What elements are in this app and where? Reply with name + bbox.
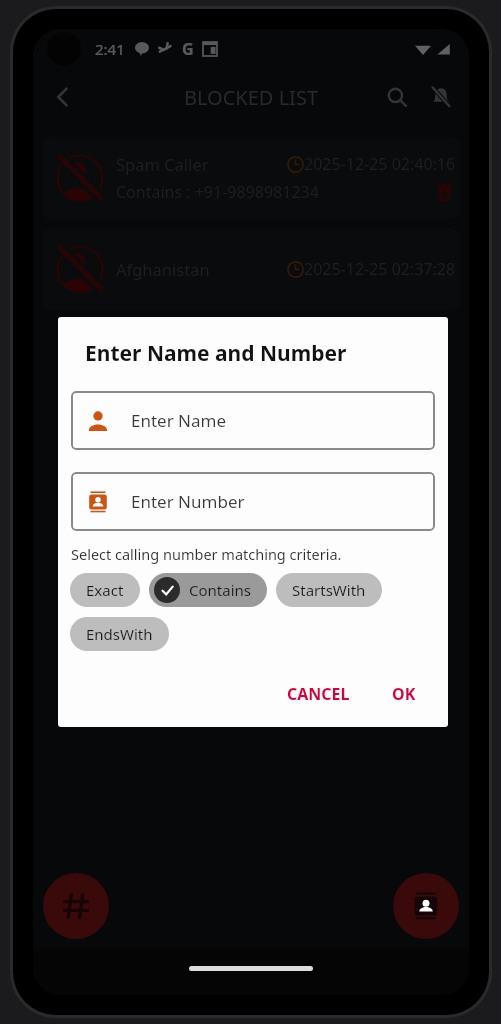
- button[interactable]: EndsWith: [70, 617, 169, 651]
- staticText: 2:41: [95, 39, 125, 59]
- button[interactable]: StartsWith: [276, 573, 382, 607]
- staticText: Contains : +91-9898981234: [116, 181, 319, 203]
- staticText: Exact: [86, 580, 124, 600]
- staticText: 2025-12-25 02:40:16: [304, 153, 456, 175]
- button[interactable]: CANCEL: [279, 677, 358, 711]
- staticText: Spam Caller: [116, 153, 209, 175]
- staticText: Enter Name: [131, 409, 227, 432]
- staticText: Contains: [189, 580, 251, 600]
- staticText: BLOCKED LIST: [184, 84, 318, 111]
- staticText: Enter Number: [131, 490, 245, 513]
- button[interactable]: Spam Caller: [42, 137, 460, 219]
- staticText: CANCEL: [287, 683, 350, 705]
- button[interactable]: Afghanistan: [42, 228, 460, 310]
- staticText: G: [182, 38, 194, 60]
- button[interactable]: Exact: [70, 573, 140, 607]
- button[interactable]: Enter Number: [71, 472, 435, 531]
- staticText: OK: [392, 683, 416, 705]
- button[interactable]: Block number: [43, 873, 109, 939]
- staticText: Enter Name and Number: [85, 339, 347, 368]
- button[interactable]: Block contact: [393, 873, 459, 939]
- staticText: Afghanistan: [116, 258, 210, 280]
- button[interactable]: Contains: [149, 573, 267, 607]
- button[interactable]: Enter Name: [71, 391, 435, 450]
- button[interactable]: Search: [375, 75, 419, 119]
- button[interactable]: Back: [41, 75, 85, 119]
- button[interactable]: Notifications off: [419, 75, 463, 119]
- button[interactable]: OK: [384, 677, 424, 711]
- staticText: Select calling number matching criteria.: [71, 544, 342, 564]
- staticText: 2025-12-25 02:37:28: [304, 258, 456, 280]
- staticText: EndsWith: [86, 624, 153, 644]
- staticText: StartsWith: [292, 580, 366, 600]
